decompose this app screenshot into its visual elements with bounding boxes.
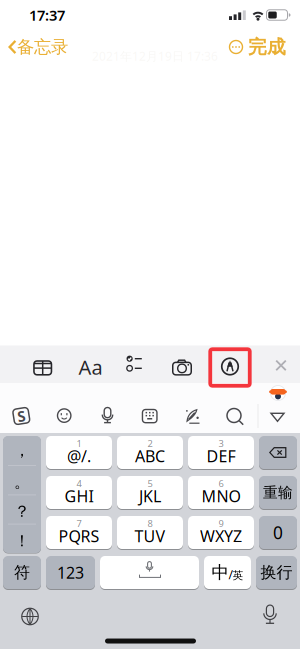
button[interactable]: 搜索 bbox=[221, 403, 249, 431]
button[interactable]: 删除 bbox=[259, 435, 297, 469]
staticText: 2 bbox=[147, 437, 152, 450]
button[interactable]: 9 bbox=[188, 515, 254, 549]
button[interactable]: 更多 bbox=[224, 35, 248, 59]
button[interactable]: 下一个输入法 bbox=[13, 600, 47, 634]
button[interactable]: 搜狗输入法 bbox=[7, 402, 35, 430]
button[interactable]: 6 bbox=[188, 475, 254, 509]
button[interactable]: 2 bbox=[117, 435, 183, 469]
staticText: 完成 bbox=[248, 35, 286, 58]
button[interactable]: 表格 bbox=[27, 350, 59, 384]
staticText: TUV bbox=[134, 525, 165, 547]
staticText: DEF bbox=[206, 445, 235, 467]
button[interactable]: 空格 bbox=[100, 555, 199, 589]
staticText: ！ bbox=[14, 531, 30, 551]
button[interactable]: 换行 bbox=[256, 555, 297, 589]
button[interactable]: 返回 备忘录 bbox=[2, 33, 74, 61]
staticText: @/. bbox=[67, 445, 91, 467]
button[interactable]: 5 bbox=[117, 475, 183, 509]
staticText: ？ bbox=[14, 502, 30, 521]
staticText: ， bbox=[14, 441, 30, 460]
button[interactable]: 0 bbox=[259, 515, 297, 549]
button[interactable]: 键盘布局 bbox=[136, 402, 164, 430]
staticText: 。 bbox=[14, 472, 30, 492]
staticText: PQRS bbox=[58, 525, 99, 547]
staticText: GHI bbox=[64, 485, 93, 507]
staticText: 123 bbox=[57, 562, 84, 583]
button[interactable]: 手写 bbox=[179, 402, 207, 430]
staticText: WXYZ bbox=[200, 525, 242, 547]
staticText: 6 bbox=[218, 477, 223, 490]
button[interactable]: 中英切换 bbox=[204, 555, 251, 589]
staticText: 换行 bbox=[260, 563, 292, 582]
staticText: 符 bbox=[14, 563, 30, 582]
button[interactable]: 关闭 bbox=[268, 350, 294, 380]
staticText: 1 bbox=[76, 437, 81, 450]
button[interactable]: 收起键盘 bbox=[263, 403, 291, 431]
staticText: / bbox=[228, 566, 232, 582]
staticText: Aa bbox=[78, 354, 102, 380]
button[interactable]: 标记 bbox=[214, 350, 246, 384]
button[interactable]: 7 bbox=[46, 515, 112, 549]
button[interactable]: 符号 bbox=[3, 436, 41, 553]
staticText: 17:37 bbox=[29, 5, 65, 25]
button[interactable]: 表情 bbox=[50, 402, 78, 430]
staticText: MNO bbox=[201, 485, 240, 507]
staticText: 备忘录 bbox=[17, 36, 68, 58]
staticText: 3 bbox=[218, 437, 223, 450]
button[interactable]: 格式 bbox=[74, 350, 106, 384]
button[interactable]: 123 bbox=[46, 555, 95, 589]
button[interactable]: 完成 bbox=[245, 33, 289, 61]
button[interactable]: 语音 bbox=[93, 402, 121, 430]
button[interactable]: 4 bbox=[46, 475, 112, 509]
button[interactable]: 重输 bbox=[259, 475, 297, 509]
staticText: 8 bbox=[147, 517, 152, 530]
staticText: 9 bbox=[218, 517, 223, 530]
button[interactable]: 符 bbox=[3, 555, 41, 589]
staticText: 4 bbox=[76, 477, 81, 490]
staticText: JKL bbox=[139, 485, 161, 507]
staticText: 5 bbox=[147, 477, 152, 490]
button[interactable]: 相机 bbox=[166, 350, 198, 384]
staticText: 重输 bbox=[263, 483, 293, 501]
button[interactable]: 8 bbox=[117, 515, 183, 549]
button[interactable]: 听写 bbox=[253, 598, 287, 632]
button[interactable]: 核对清单 bbox=[119, 350, 151, 384]
button[interactable]: 1 bbox=[46, 435, 112, 469]
staticText: 7 bbox=[76, 517, 81, 530]
button[interactable]: 3 bbox=[188, 435, 254, 469]
staticText: 0 bbox=[273, 521, 283, 544]
staticText: 中 bbox=[211, 562, 228, 583]
staticText: S bbox=[17, 406, 25, 426]
staticText: ABC bbox=[135, 445, 165, 467]
staticText: 英 bbox=[232, 569, 243, 582]
